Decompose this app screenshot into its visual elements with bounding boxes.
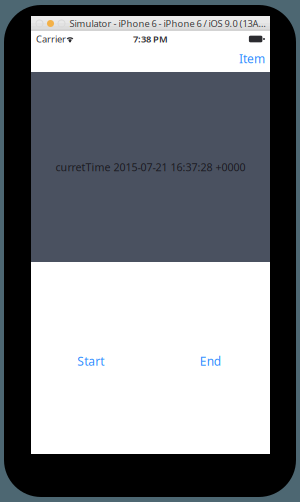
button[interactable]: Start [31, 351, 150, 371]
button[interactable]: End [150, 351, 270, 371]
staticText: Item [239, 50, 265, 66]
staticText: 7:38 PM [133, 33, 168, 45]
staticText: Simulator - iPhone 6 - iPhone 6 / iOS 9.… [69, 17, 265, 30]
button[interactable]: Item [235, 47, 269, 69]
staticText: End [200, 353, 221, 369]
staticText: Start [77, 353, 104, 369]
staticText: Carrier [36, 33, 66, 45]
staticText: curretTime 2015-07-21 16:37:28 +0000 [55, 160, 245, 174]
